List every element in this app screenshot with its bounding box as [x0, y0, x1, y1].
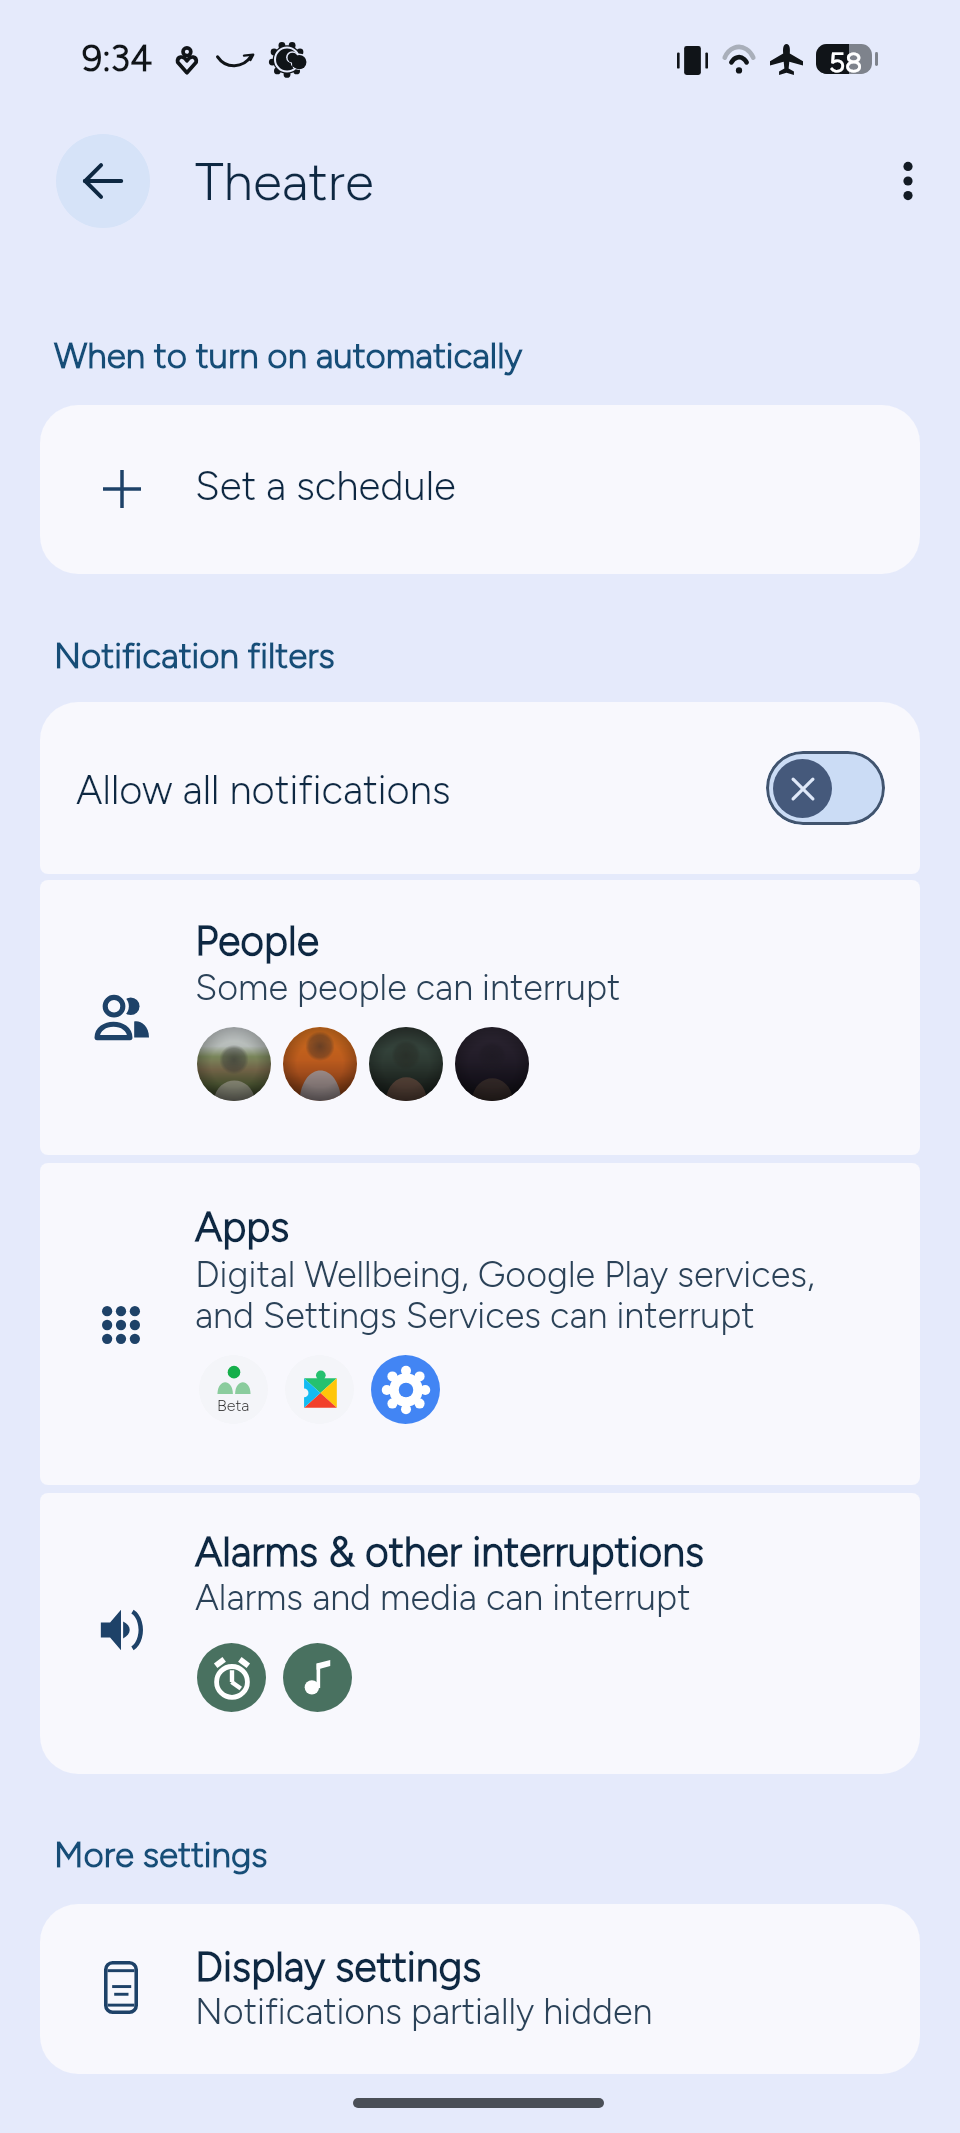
staticText: Set a schedule	[195, 462, 456, 510]
staticText: 9:34	[82, 37, 153, 80]
button[interactable]: Alarms	[197, 1643, 266, 1712]
button[interactable]: Back	[56, 134, 150, 228]
staticText: 58	[829, 45, 863, 79]
staticText: Allow all notifications	[76, 766, 451, 814]
button[interactable]: More options	[872, 145, 944, 217]
button[interactable]: Display settings	[40, 1904, 920, 2074]
button[interactable]: Media	[283, 1643, 352, 1712]
staticText: Theatre	[195, 150, 374, 214]
staticText: Some people can interrupt	[195, 966, 621, 1009]
button[interactable]: Allow all notifications toggle	[766, 751, 885, 825]
staticText: More settings	[54, 1834, 268, 1876]
staticText: Display settings	[195, 1942, 482, 1991]
staticText: Apps	[195, 1202, 290, 1251]
button[interactable]: Apps	[40, 1163, 920, 1485]
staticText: Alarms & other interruptions	[195, 1527, 705, 1576]
staticText: When to turn on automatically	[54, 335, 523, 377]
button[interactable]: Allow all notifications	[40, 702, 920, 874]
button[interactable]: Set a schedule	[40, 405, 920, 574]
staticText: People	[195, 916, 319, 965]
staticText: Alarms and media can interrupt	[195, 1576, 691, 1619]
staticText: Digital Wellbeing, Google Play services,…	[195, 1253, 815, 1337]
staticText: Notification filters	[54, 635, 335, 677]
button[interactable]: Alarms & other interruptions	[40, 1493, 920, 1774]
staticText: Notifications partially hidden	[195, 1990, 653, 2033]
button[interactable]: People	[40, 880, 920, 1155]
staticText: Beta	[217, 1396, 250, 1415]
